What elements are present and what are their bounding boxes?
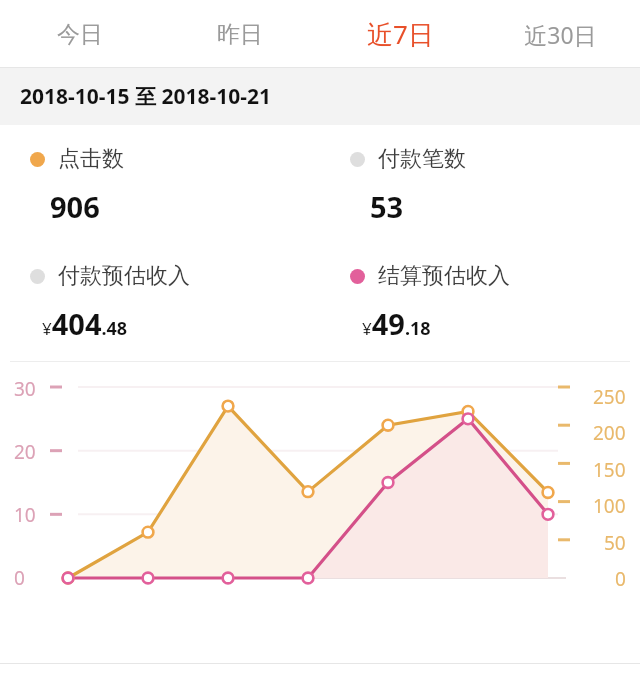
staticText: ¥404.48 (42, 304, 128, 343)
staticText: 250 (593, 384, 626, 410)
staticText: 点击数 (58, 145, 124, 173)
staticText: 53 (370, 187, 404, 226)
staticText: 20 (14, 439, 36, 465)
button[interactable]: 昨日 (160, 0, 320, 68)
staticText: 30 (14, 376, 36, 402)
staticText: ¥49.18 (362, 304, 431, 343)
staticText: 付款笔数 (378, 145, 466, 173)
button[interactable]: 付款笔数 (320, 145, 640, 226)
staticText: 100 (593, 493, 626, 519)
staticText: 近30日 (524, 19, 597, 50)
button[interactable]: 近30日 (480, 0, 640, 68)
staticText: 150 (593, 457, 626, 483)
button[interactable]: 付款预估收入 (0, 262, 320, 343)
staticText: 10 (14, 502, 36, 528)
staticText: 付款预估收入 (58, 262, 190, 290)
staticText: 50 (604, 530, 626, 556)
staticText: 200 (593, 420, 626, 446)
staticText: 近7日 (367, 16, 434, 52)
staticText: 今日 (57, 20, 103, 49)
button[interactable]: 今日 (0, 0, 160, 68)
staticText: 结算预估收入 (378, 262, 510, 290)
button[interactable]: 结算预估收入 (320, 262, 640, 343)
staticText: 0 (14, 565, 25, 591)
staticText: 2018-10-15 至 2018-10-21 (20, 82, 271, 111)
staticText: 昨日 (217, 20, 263, 49)
button[interactable]: 点击数 (0, 145, 320, 226)
staticText: 0 (615, 566, 626, 592)
button[interactable]: 近7日 (320, 0, 480, 68)
staticText: 906 (50, 187, 100, 226)
